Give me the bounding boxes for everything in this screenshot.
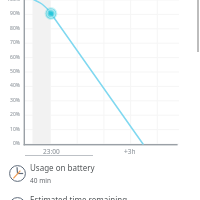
staticText: 20% bbox=[10, 111, 20, 118]
staticText: +3h bbox=[124, 147, 136, 156]
staticText: 70% bbox=[10, 39, 20, 46]
staticText: 10% bbox=[10, 126, 20, 133]
staticText: 30% bbox=[10, 97, 20, 104]
staticText: Usage on battery bbox=[30, 162, 95, 173]
staticText: 40 min bbox=[30, 176, 51, 185]
staticText: Estimated time remaining bbox=[30, 194, 128, 200]
staticText: 50% bbox=[10, 68, 20, 75]
button[interactable]: Usage on battery bbox=[0, 157, 200, 189]
staticText: 90% bbox=[10, 10, 20, 17]
button[interactable]: Estimated time remaining bbox=[0, 189, 200, 200]
staticText: 80% bbox=[10, 25, 20, 32]
staticText: 0% bbox=[12, 140, 20, 147]
staticText: 40% bbox=[10, 82, 20, 89]
staticText: 60% bbox=[10, 54, 20, 61]
staticText: 100% bbox=[7, 0, 20, 3]
staticText: 23:00 bbox=[43, 147, 60, 156]
